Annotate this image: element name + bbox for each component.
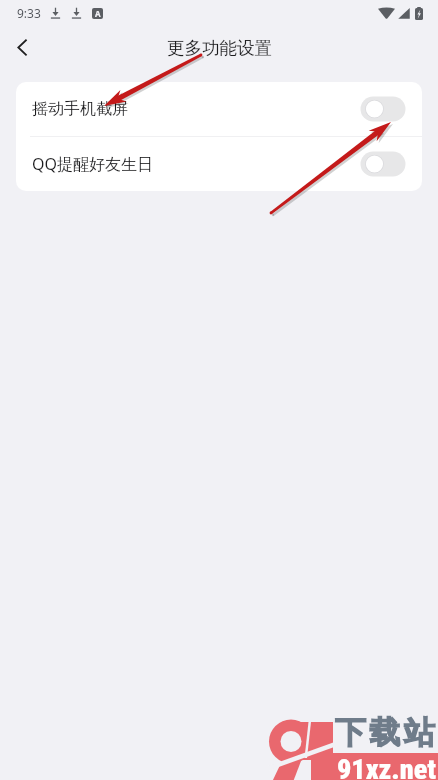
staticText: 9:33 [17, 5, 41, 21]
staticText: 91xz.net [337, 753, 436, 780]
staticText: QQ提醒好友生日 [32, 153, 153, 175]
button[interactable]: Toggle [360, 96, 406, 122]
button[interactable]: 摇动手机截屏 [16, 82, 422, 136]
button[interactable]: Toggle [360, 151, 406, 177]
staticText: 更多功能设置 [167, 37, 272, 59]
staticText: A [95, 8, 101, 19]
staticText: 下载站 [335, 713, 438, 752]
button[interactable]: QQ提醒好友生日 [16, 137, 422, 191]
staticText: 摇动手机截屏 [32, 99, 128, 119]
button[interactable]: Back [0, 26, 44, 69]
